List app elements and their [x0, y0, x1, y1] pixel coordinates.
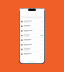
button[interactable]	[20, 29, 44, 33]
button[interactable]	[20, 52, 44, 56]
button[interactable]	[20, 24, 44, 28]
button[interactable]	[20, 33, 44, 38]
button[interactable]	[20, 19, 44, 24]
button[interactable]	[20, 43, 44, 47]
button[interactable]	[20, 47, 44, 52]
button[interactable]	[20, 38, 44, 42]
